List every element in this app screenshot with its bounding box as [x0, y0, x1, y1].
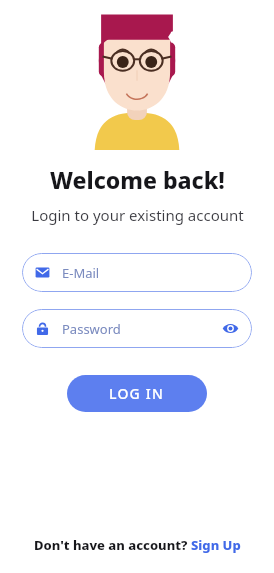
button[interactable]: Show password — [222, 320, 239, 337]
button[interactable]: Password — [22, 309, 252, 348]
staticText: Welcome back! — [50, 164, 225, 195]
staticText: Password — [62, 320, 121, 338]
button[interactable]: LOG IN — [67, 375, 207, 412]
staticText: E-Mail — [62, 264, 100, 282]
button[interactable]: E-Mail — [22, 253, 252, 292]
button[interactable]: Sign Up — [191, 536, 241, 554]
staticText: Login to your existing account — [31, 205, 244, 225]
staticText: LOG IN — [109, 384, 165, 403]
staticText: Don't have an account? — [34, 536, 191, 554]
staticText: Sign Up — [191, 536, 241, 554]
